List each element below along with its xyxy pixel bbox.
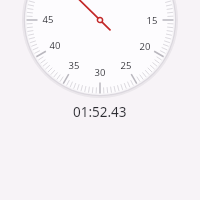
button[interactable]: Stopwatch [0,0,200,200]
